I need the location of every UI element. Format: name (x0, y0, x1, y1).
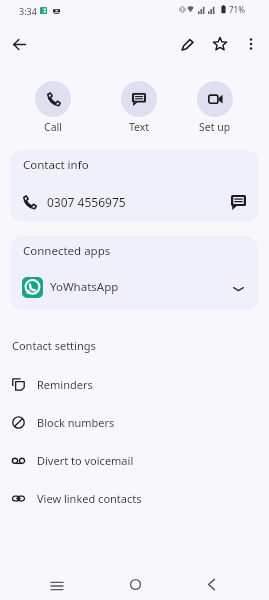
button[interactable]: 0307 4556975 (10, 186, 259, 218)
button[interactable]: Send message (227, 191, 249, 213)
button[interactable]: Call (35, 81, 71, 134)
staticText: Connected apps (23, 243, 111, 259)
staticText: Block numbers (37, 415, 115, 430)
staticText: YoWhatsApp (50, 279, 119, 295)
button[interactable]: Text (121, 81, 157, 134)
button[interactable]: Reminders (0, 365, 269, 403)
button[interactable]: Home (119, 568, 151, 600)
button[interactable]: Back (2, 27, 36, 61)
staticText: Text (129, 120, 150, 134)
staticText: Divert to voicemail (37, 453, 134, 468)
staticText: Contact info (23, 157, 89, 173)
button[interactable]: YoWhatsApp (10, 270, 259, 304)
staticText: Call (44, 120, 62, 134)
button[interactable]: Edit (170, 27, 204, 61)
button[interactable]: Divert to voicemail (0, 441, 269, 479)
staticText: View linked contacts (37, 491, 142, 506)
staticText: 0307 4556975 (47, 194, 126, 210)
staticText: Reminders (37, 377, 93, 392)
button[interactable]: Set up (197, 81, 233, 134)
staticText: Set up (199, 120, 231, 134)
button[interactable]: View linked contacts (0, 479, 269, 517)
button[interactable]: Back (195, 568, 227, 600)
button[interactable]: Add to favourites (203, 27, 237, 61)
staticText: Contact settings (12, 338, 96, 353)
button[interactable]: Block numbers (0, 403, 269, 441)
staticText: 71% (229, 4, 245, 15)
button[interactable]: More options (234, 27, 268, 61)
staticText: 3:34 (19, 5, 37, 17)
button[interactable]: Recent apps (41, 570, 73, 600)
